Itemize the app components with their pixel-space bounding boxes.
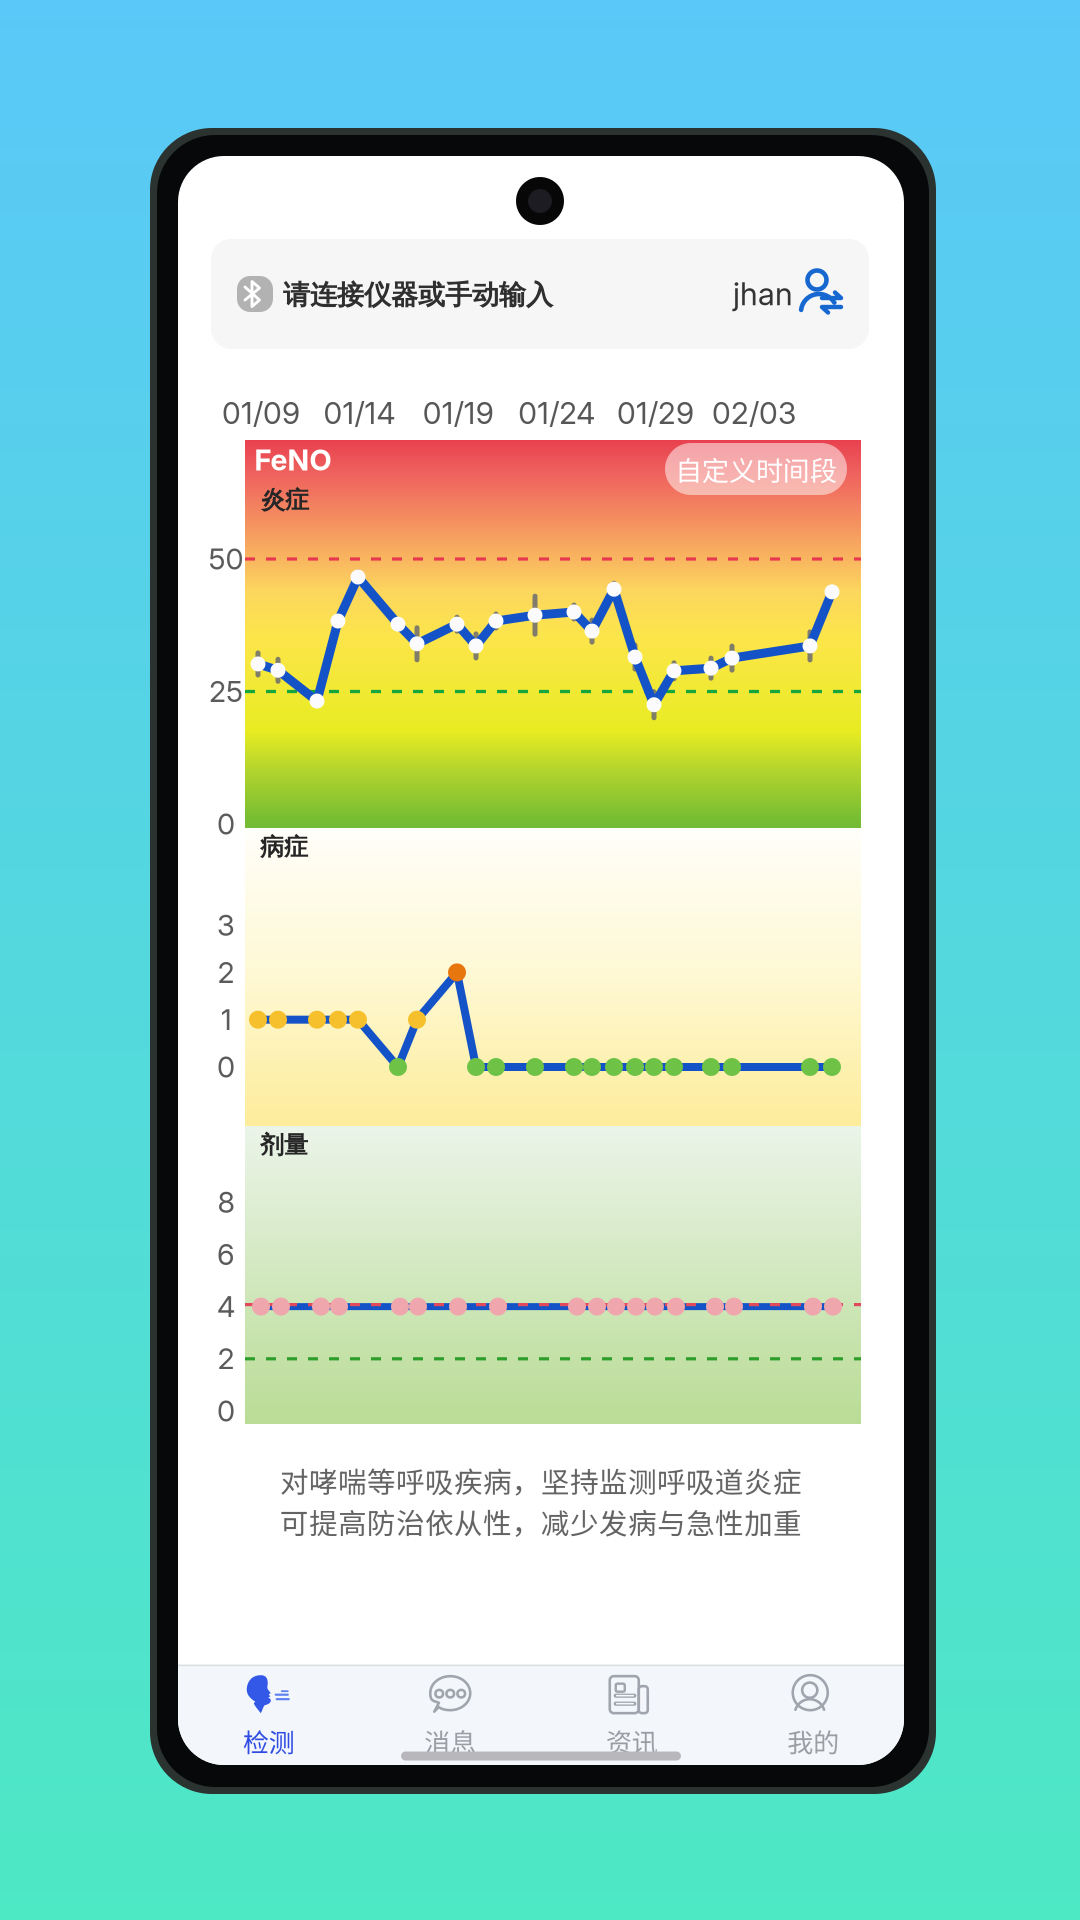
button[interactable]: 自定义时间段: [665, 443, 847, 495]
staticText: 6: [217, 1237, 235, 1272]
staticText: 0: [217, 806, 235, 842]
staticText: 病症: [260, 832, 308, 862]
staticText: 2: [217, 955, 234, 990]
staticText: 01/09: [222, 395, 300, 431]
button[interactable]: 请连接仪器或手动输入: [211, 239, 869, 349]
staticText: 自定义时间段: [675, 449, 837, 489]
staticText: 01/24: [518, 395, 595, 431]
staticText: 50: [208, 541, 243, 577]
staticText: 炎症: [261, 485, 309, 515]
staticText: 01/14: [324, 395, 396, 431]
staticText: 可提高防治依从性，减少发病与急性加重: [280, 1501, 802, 1542]
staticText: 8: [217, 1185, 234, 1220]
staticText: jhan: [733, 275, 793, 313]
staticText: 02/03: [712, 395, 796, 431]
staticText: 3: [217, 908, 235, 943]
button[interactable]: 消息: [359, 1666, 541, 1765]
staticText: 请连接仪器或手动输入: [283, 278, 553, 312]
staticText: 对哮喘等呼吸疾病，坚持监测呼吸道炎症: [280, 1460, 802, 1501]
staticText: 0: [217, 1049, 235, 1085]
staticText: 01/19: [423, 395, 494, 431]
staticText: 消息: [424, 1722, 476, 1760]
staticText: 25: [209, 674, 243, 709]
staticText: 我的: [787, 1722, 839, 1760]
button[interactable]: 资讯: [541, 1666, 722, 1765]
staticText: 2: [217, 1341, 234, 1376]
staticText: 4: [217, 1289, 235, 1324]
staticText: 0: [217, 1393, 235, 1429]
button[interactable]: 我的: [722, 1666, 904, 1765]
staticText: 剂量: [260, 1130, 308, 1160]
staticText: 资讯: [606, 1722, 658, 1760]
staticText: 1: [220, 1002, 231, 1037]
staticText: 检测: [243, 1722, 295, 1760]
staticText: 01/29: [617, 395, 694, 431]
button[interactable]: 检测: [178, 1666, 359, 1765]
staticText: FeNO: [254, 442, 331, 478]
